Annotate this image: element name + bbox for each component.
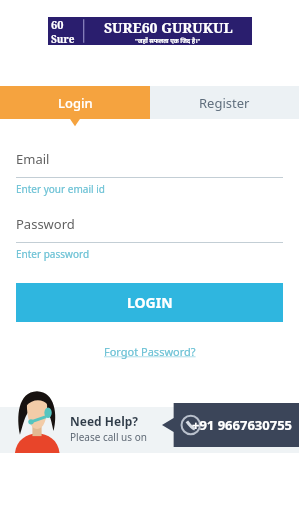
staticText: Sure — [51, 32, 75, 45]
button[interactable]: Register — [150, 86, 299, 119]
staticText: LOGIN — [127, 293, 173, 312]
staticText: Forgot Password? — [104, 344, 196, 359]
staticText: "जहाँ सफलता एक जिद है।" — [135, 37, 201, 45]
button[interactable]: Login — [0, 86, 150, 119]
staticText: Enter your email id — [16, 182, 105, 196]
button[interactable]: LOGIN — [16, 283, 283, 322]
staticText: Need Help? — [70, 413, 139, 429]
staticText: Please call us on — [70, 430, 147, 444]
staticText: +91 9667630755 — [192, 416, 293, 434]
staticText: Login — [58, 94, 93, 112]
button[interactable]: Forgot Password? — [98, 341, 202, 362]
staticText: Enter password — [16, 247, 90, 261]
staticText: Email — [16, 150, 50, 168]
staticText: 60 — [51, 17, 64, 32]
staticText: SURE60 GURUKUL — [104, 18, 233, 37]
button[interactable]: Call +91 9667630755 — [162, 403, 299, 447]
staticText: Register — [199, 94, 250, 112]
staticText: Password — [16, 215, 75, 233]
